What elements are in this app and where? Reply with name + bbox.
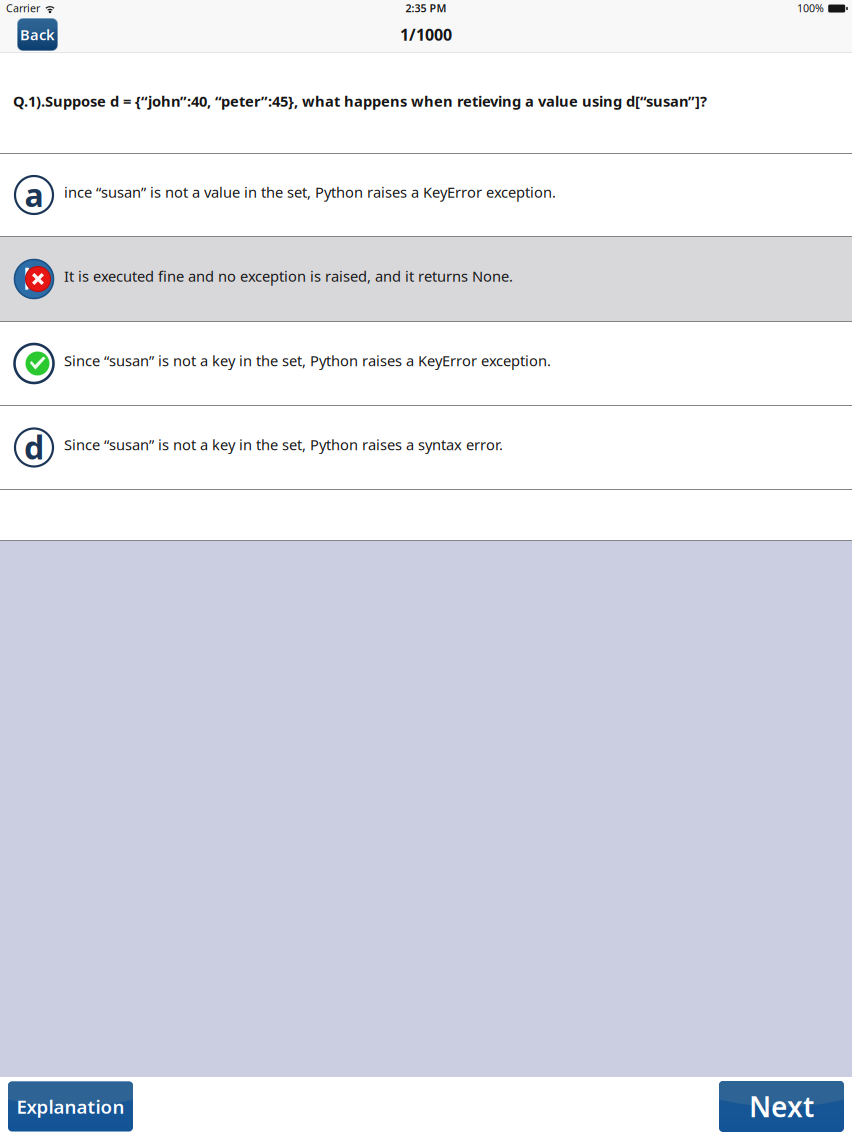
staticText: a bbox=[24, 173, 43, 216]
button[interactable]: Next bbox=[719, 1081, 844, 1132]
staticText: Since “susan” is not a key in the set, P… bbox=[64, 351, 551, 370]
staticText: Back bbox=[20, 25, 55, 44]
staticText: ince “susan” is not a value in the set, … bbox=[64, 182, 556, 202]
staticText: 2:35 PM bbox=[405, 1, 446, 15]
staticText: 1/1000 bbox=[400, 24, 452, 45]
staticText: Q.1).Suppose d = {“john”:40, “peter”:45}… bbox=[13, 91, 707, 111]
staticText: Carrier bbox=[6, 1, 40, 15]
staticText: d bbox=[24, 426, 44, 468]
button[interactable]: Since “susan” is not a key in the set, P… bbox=[0, 322, 852, 406]
staticText: Since “susan” is not a key in the set, P… bbox=[64, 435, 503, 454]
staticText: Next bbox=[749, 1088, 814, 1125]
staticText: Explanation bbox=[16, 1094, 124, 1119]
button[interactable]: a bbox=[0, 154, 852, 237]
staticText: b bbox=[23, 260, 41, 298]
button[interactable]: d bbox=[0, 406, 852, 490]
staticText: 100% bbox=[797, 1, 824, 15]
staticText: It is executed fine and no exception is … bbox=[64, 266, 513, 286]
button[interactable]: Explanation bbox=[8, 1081, 133, 1131]
button[interactable]: Back bbox=[17, 18, 58, 51]
button[interactable]: b bbox=[0, 237, 852, 322]
